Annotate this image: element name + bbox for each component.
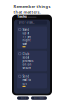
button[interactable]: Enter a task… <box>17 20 47 24</box>
staticText: Tasks <box>17 14 27 19</box>
staticText: Enter a task… <box>19 21 35 24</box>
staticText: Clear completed <box>33 97 44 99</box>
button[interactable]: Clear completed <box>31 96 47 100</box>
staticText: Stand up at 11 am, night scan <box>22 28 31 46</box>
staticText: Clear all <box>20 97 25 99</box>
button[interactable]: Stand up at 11 am, night scan <box>17 26 47 49</box>
button[interactable]: Send mail to Leo <box>17 73 47 88</box>
staticText: Send mail to Leo <box>22 75 31 85</box>
button[interactable]: Clear all <box>17 96 29 100</box>
staticText: Club social promotion on secure <box>22 52 34 70</box>
button[interactable]: Club social promotion on secure <box>17 51 47 71</box>
staticText: Remember things that matters. <box>13 4 50 14</box>
